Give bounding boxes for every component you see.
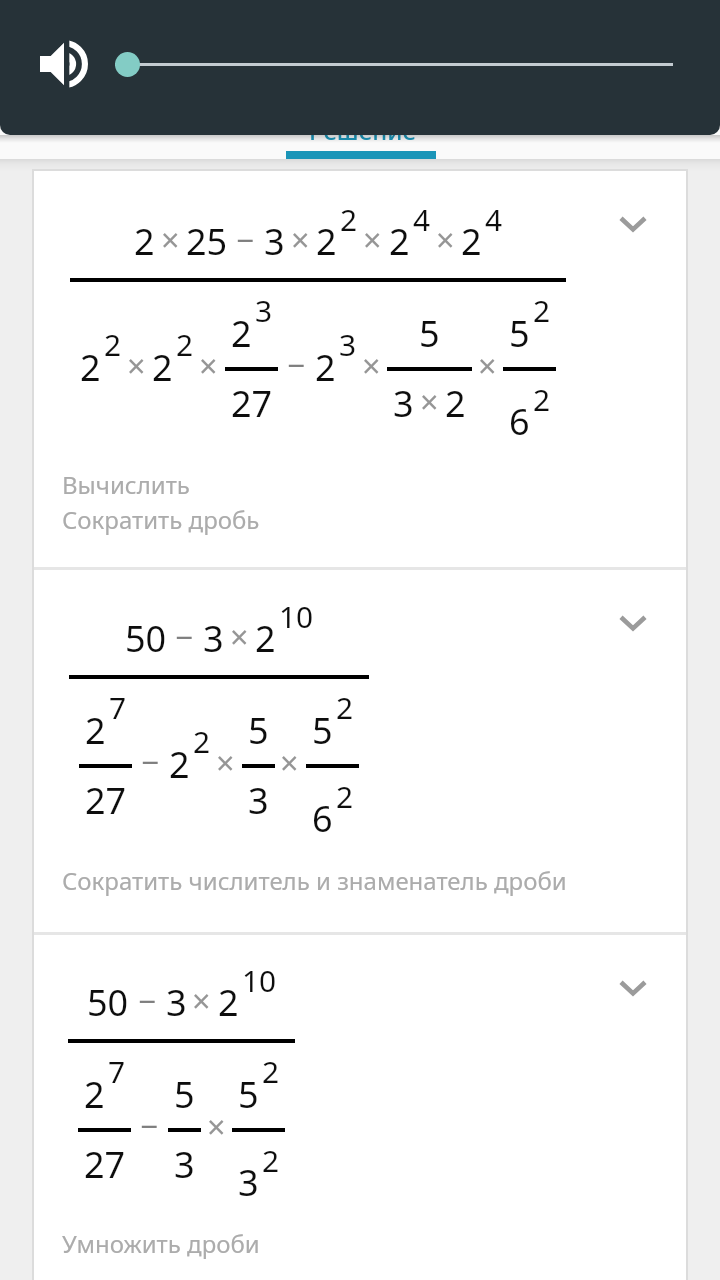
staticText: × (230, 614, 249, 658)
staticText: 27 (84, 1140, 126, 1189)
staticText: × (161, 217, 180, 261)
staticText: Решение (309, 114, 416, 147)
staticText: × (291, 217, 310, 261)
staticText: 2 (262, 1051, 280, 1092)
staticText: 5 (174, 1070, 195, 1119)
button[interactable]: Collapse step (34, 171, 686, 567)
staticText: 4 (485, 199, 503, 240)
staticText: × (363, 217, 382, 261)
staticText: 3 (248, 776, 269, 825)
staticText: Умножить дроби (62, 1227, 260, 1260)
staticText: 3 (264, 217, 285, 266)
staticText: − (175, 615, 194, 658)
button[interactable] (115, 51, 673, 77)
staticText: − (236, 218, 255, 261)
staticText: 5 (312, 706, 333, 755)
staticText: × (216, 740, 235, 784)
staticText: Сократить дробь (62, 503, 260, 536)
staticText: 2 (316, 217, 337, 266)
staticText: 2 (134, 217, 155, 266)
staticText: 3 (393, 379, 414, 428)
staticText: 7 (108, 1051, 126, 1092)
staticText: 2 (336, 776, 354, 817)
button[interactable]: Volume (32, 32, 96, 96)
button[interactable]: Collapse step (34, 935, 686, 1280)
staticText: 3 (238, 1158, 259, 1207)
staticText: × (436, 217, 455, 261)
staticText: 2 (84, 1070, 105, 1119)
staticText: 2 (461, 217, 482, 266)
staticText: × (199, 343, 218, 387)
staticText: × (207, 1104, 226, 1148)
staticText: 2 (445, 379, 466, 428)
staticText: 5 (419, 309, 440, 358)
button[interactable]: Collapse step (34, 570, 686, 932)
staticText: − (140, 1104, 159, 1147)
staticText: 2 (262, 1140, 280, 1181)
staticText: 5 (509, 309, 530, 358)
staticText: × (280, 740, 299, 784)
staticText: × (362, 343, 381, 387)
staticText: 3 (166, 978, 187, 1027)
staticText: 3 (174, 1140, 195, 1189)
staticText: − (287, 343, 306, 386)
staticText: 7 (109, 687, 127, 728)
staticText: × (420, 379, 439, 423)
staticText: 2 (176, 324, 194, 365)
staticText: Сократить числитель и знаменатель дроби (62, 864, 567, 897)
staticText: 4 (413, 199, 431, 240)
staticText: − (138, 979, 157, 1022)
staticText: 2 (193, 721, 211, 762)
staticText: Вычислить (62, 468, 190, 501)
staticText: 3 (339, 324, 357, 365)
staticText: 25 (186, 217, 228, 266)
staticText: 2 (152, 343, 173, 392)
staticText: 27 (231, 379, 273, 428)
staticText: 2 (169, 740, 190, 789)
staticText: 2 (218, 978, 239, 1027)
staticText: 50 (125, 614, 167, 663)
staticText: 2 (336, 687, 354, 728)
staticText: 2 (255, 614, 276, 663)
staticText: 50 (87, 978, 129, 1027)
staticText: 5 (238, 1070, 259, 1119)
staticText: 2 (315, 343, 336, 392)
staticText: 10 (279, 596, 314, 637)
staticText: × (478, 343, 497, 387)
button[interactable]: Collapse step (613, 602, 653, 642)
staticText: 2 (533, 290, 551, 331)
staticText: 3 (203, 614, 224, 663)
button[interactable]: Collapse step (613, 967, 653, 1007)
staticText: × (127, 343, 146, 387)
staticText: 6 (509, 397, 530, 446)
staticText: 5 (248, 706, 269, 755)
staticText: 2 (340, 199, 358, 240)
staticText: 2 (533, 379, 551, 420)
staticText: × (192, 978, 211, 1022)
staticText: 2 (231, 309, 252, 358)
staticText: 6 (312, 794, 333, 843)
staticText: 10 (242, 960, 277, 1001)
staticText: 2 (104, 324, 122, 365)
staticText: 2 (85, 706, 106, 755)
staticText: 2 (80, 343, 101, 392)
staticText: 27 (85, 776, 127, 825)
button[interactable]: Collapse step (613, 203, 653, 243)
staticText: 3 (255, 290, 273, 331)
staticText: − (141, 740, 160, 783)
staticText: 2 (389, 217, 410, 266)
